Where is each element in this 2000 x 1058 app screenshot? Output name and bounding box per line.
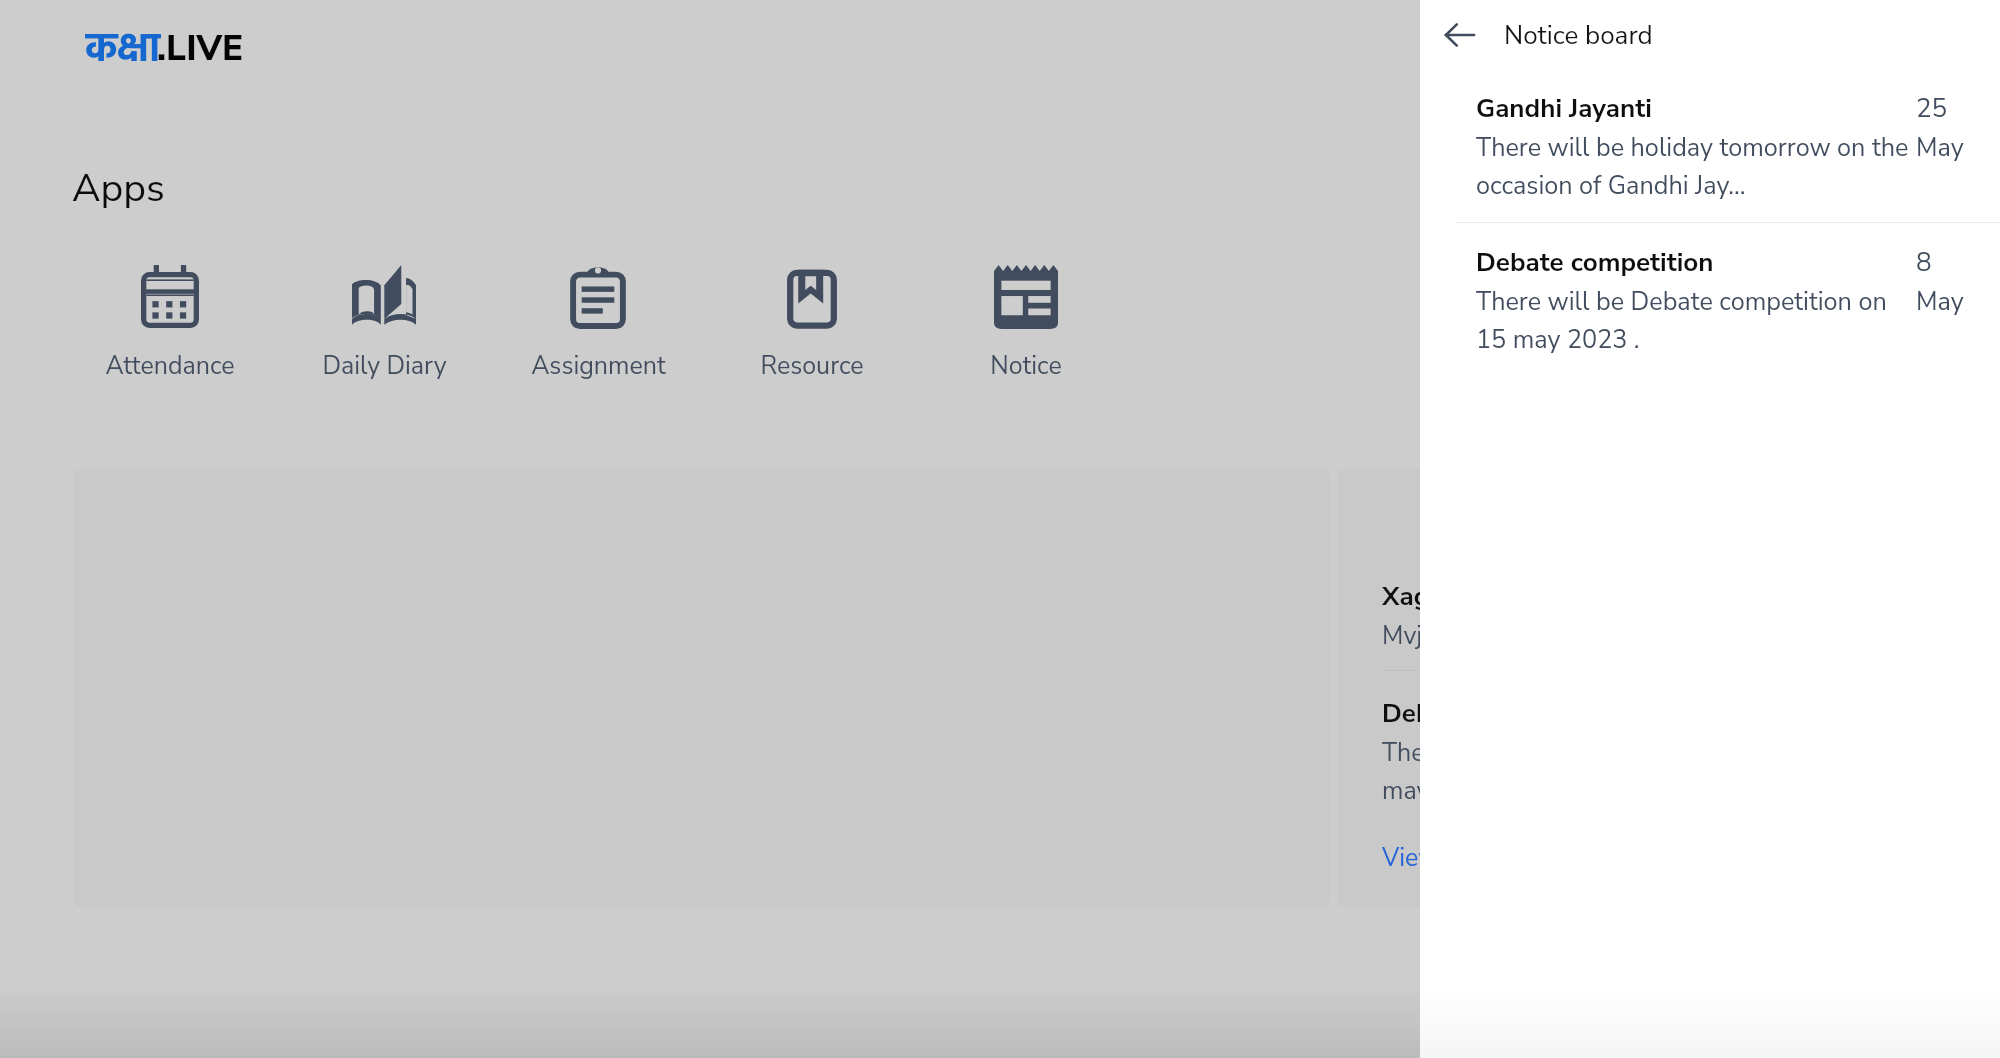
button[interactable]: Gandhi Jayanti	[1420, 70, 2000, 222]
staticText: There will be holiday tomorrow on the oc…	[1476, 131, 1909, 203]
staticText: View all	[1382, 841, 1474, 875]
staticText: .LIVE	[157, 25, 244, 73]
staticText: Notice	[990, 349, 1062, 383]
staticText: Assignment	[531, 349, 666, 383]
staticText: 8	[1916, 245, 1932, 280]
staticText: May	[1916, 131, 1964, 165]
staticText: There will be Debate may 2023 .	[1382, 736, 1618, 808]
button[interactable]: Resource	[705, 265, 919, 383]
button[interactable]: कक्षा.LIVE home	[86, 10, 246, 70]
staticText: Apps	[72, 162, 165, 215]
staticText: May	[1916, 285, 1964, 319]
staticText: Debate competition	[1476, 245, 1714, 280]
button[interactable]: Daily Diary	[277, 265, 491, 383]
button[interactable]: Notice	[919, 265, 1133, 383]
staticText: Debate competition	[1382, 696, 1620, 731]
button[interactable]: Attendance	[63, 265, 277, 383]
button[interactable]: Back	[1434, 9, 1486, 61]
staticText: 25	[1916, 91, 1948, 126]
staticText: Gandhi Jayanti	[1476, 91, 1652, 126]
button[interactable]: Debate competition	[1420, 223, 2000, 379]
staticText: Attendance	[105, 349, 235, 383]
staticText: Mvjeiw nshs sjje	[1382, 619, 1565, 653]
staticText: Notice board	[1504, 18, 1653, 53]
button[interactable]: View all	[1382, 841, 1474, 875]
staticText: There will be Debate competition on 15 m…	[1476, 285, 1887, 357]
staticText: कक्षा	[85, 19, 161, 79]
button[interactable]: Assignment	[491, 265, 705, 383]
staticText: Resource	[760, 349, 864, 383]
staticText: Daily Diary	[322, 349, 447, 383]
staticText: Xagt nsiw	[1382, 579, 1504, 614]
